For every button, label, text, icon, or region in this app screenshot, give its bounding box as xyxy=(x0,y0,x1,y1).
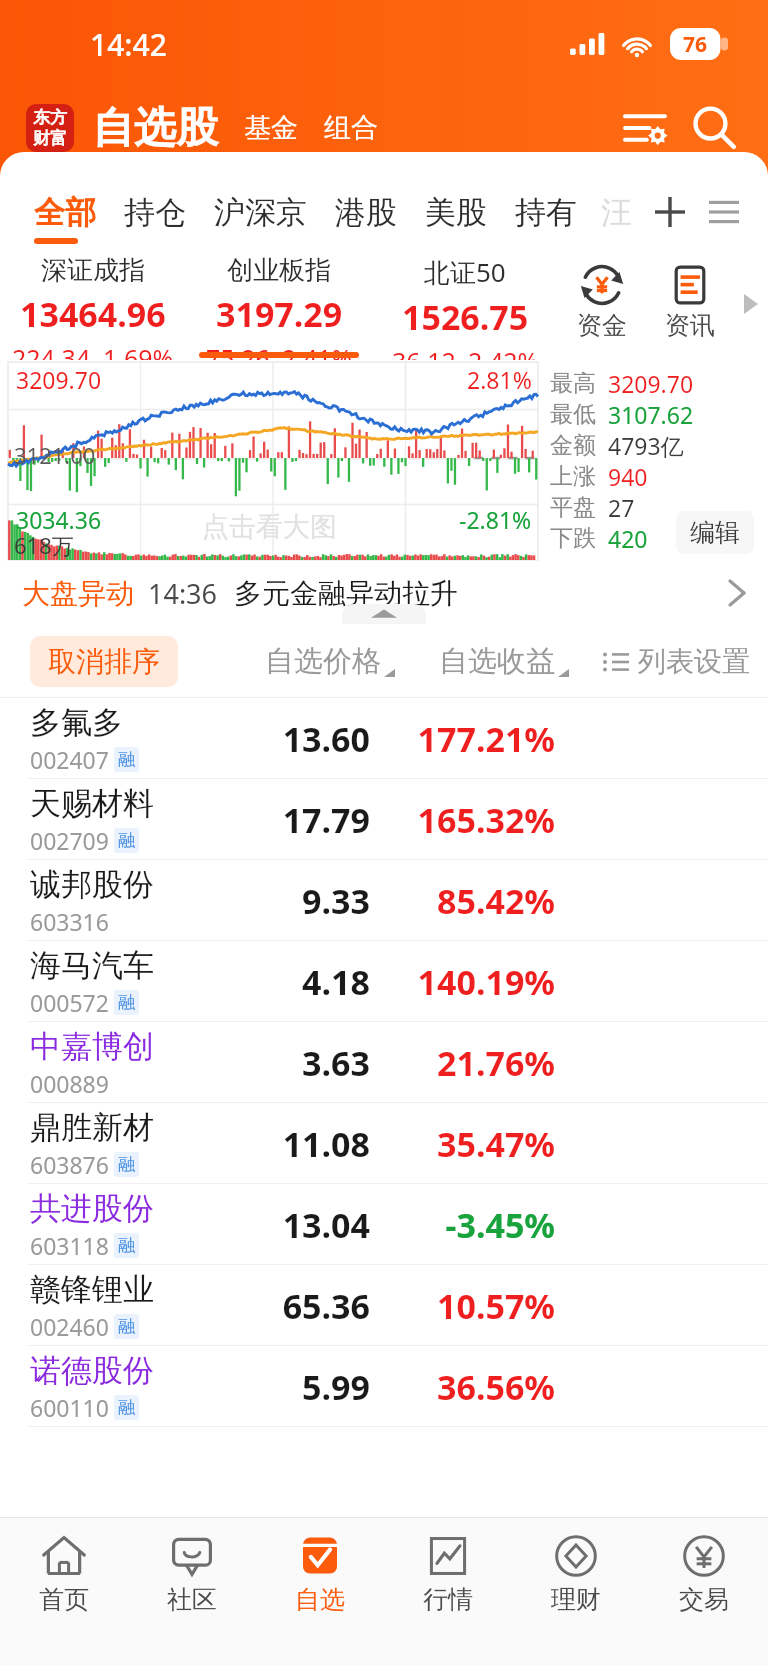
button[interactable]: 首页 xyxy=(0,1518,128,1630)
button[interactable]: 更多分组 xyxy=(700,188,748,236)
staticText: 13.60 xyxy=(282,716,370,762)
staticText: 4793亿 xyxy=(608,430,684,461)
staticText: 组合 xyxy=(324,111,378,145)
button[interactable]: 鼎胜新材 xyxy=(0,1103,768,1184)
button[interactable]: 社区 xyxy=(128,1518,256,1630)
staticText: 4.18 xyxy=(302,959,370,1005)
staticText: 603876 xyxy=(30,1149,109,1180)
button[interactable]: 深证成指 xyxy=(0,248,186,360)
staticText: 行情 xyxy=(423,1584,473,1615)
staticText: 自选收益 xyxy=(439,643,555,680)
button[interactable]: 行情 xyxy=(384,1518,512,1630)
staticText: 上涨 xyxy=(550,462,596,491)
staticText: 天赐材料 xyxy=(30,784,154,823)
staticText: 融 xyxy=(118,1316,135,1337)
button[interactable]: 添加自选 xyxy=(648,190,692,234)
staticText: 2.81% xyxy=(467,364,532,395)
staticText: 35.47% xyxy=(436,1121,555,1167)
staticText: 27 xyxy=(608,492,635,523)
staticText: 85.42% xyxy=(436,878,555,924)
staticText: 11.08 xyxy=(282,1121,370,1167)
staticText: 177.21% xyxy=(417,716,555,762)
staticText: 9.33 xyxy=(302,878,370,924)
button[interactable]: 自选收益 xyxy=(437,635,571,688)
button[interactable]: 自选 xyxy=(256,1518,384,1630)
staticText: 3209.70 xyxy=(16,364,102,395)
staticText: 东方 xyxy=(33,107,67,128)
staticText: 共进股份 xyxy=(30,1189,154,1228)
button[interactable]: 赣锋锂业 xyxy=(0,1265,768,1346)
button[interactable]: 持有 xyxy=(501,185,591,240)
staticText: 3.63 xyxy=(302,1040,370,1086)
staticText: 多元金融异动拉升 xyxy=(234,576,458,611)
staticText: 美股 xyxy=(425,193,487,232)
staticText: 鼎胜新材 xyxy=(30,1108,154,1147)
staticText: 2.41% xyxy=(282,341,353,360)
staticText: 1.69% xyxy=(103,341,174,360)
button[interactable]: 天赐材料 xyxy=(0,779,768,860)
staticText: 3034.36 xyxy=(16,504,102,535)
button[interactable]: 持仓 xyxy=(110,185,200,240)
staticText: 618万 xyxy=(14,530,74,560)
button[interactable]: 资金 xyxy=(558,248,646,360)
staticText: 融 xyxy=(118,749,135,770)
button[interactable]: 全部 xyxy=(20,185,110,240)
staticText: 融 xyxy=(118,1235,135,1256)
staticText: 3197.29 xyxy=(216,291,343,337)
button[interactable]: 多氟多 xyxy=(0,698,768,779)
staticText: 36.56% xyxy=(436,1364,555,1410)
staticText: 000889 xyxy=(30,1068,109,1099)
staticText: 多氟多 xyxy=(30,703,123,742)
button[interactable]: 美股 xyxy=(411,185,501,240)
button[interactable]: 诺德股份 xyxy=(0,1346,768,1427)
staticText: 深证成指 xyxy=(41,254,145,287)
button[interactable]: 取消排序 xyxy=(30,636,178,687)
button[interactable]: 搜索 xyxy=(680,94,748,162)
staticText: 创业板指 xyxy=(227,254,331,287)
staticText: 603118 xyxy=(30,1230,109,1261)
staticText: 3107.62 xyxy=(608,399,694,430)
staticText: 76 xyxy=(683,30,708,59)
button[interactable]: 编辑 xyxy=(676,511,754,554)
button[interactable]: 港股 xyxy=(321,185,411,240)
staticText: 融 xyxy=(118,830,135,851)
staticText: 600110 xyxy=(30,1392,109,1423)
button[interactable]: 交易 xyxy=(640,1518,768,1630)
staticText: 940 xyxy=(608,461,648,492)
staticText: 10.57% xyxy=(436,1283,555,1329)
staticText: 大盘异动 xyxy=(22,576,134,611)
button[interactable]: 理财 xyxy=(512,1518,640,1630)
button[interactable]: 组合 xyxy=(318,105,384,151)
button[interactable]: 收起 xyxy=(342,604,426,624)
button[interactable]: 自选价格 xyxy=(263,635,397,688)
staticText: 持有 xyxy=(515,193,577,232)
staticText: -2.81% xyxy=(459,504,532,535)
button[interactable]: 沪深京 xyxy=(200,185,321,240)
staticText: 下跌 xyxy=(550,524,596,553)
button[interactable]: 基金 xyxy=(238,105,304,151)
staticText: 诺德股份 xyxy=(30,1351,154,1390)
staticText: 3209.70 xyxy=(608,368,694,399)
staticText: 首页 xyxy=(39,1584,89,1615)
staticText: 自选股 xyxy=(92,102,218,155)
button[interactable]: 大盘异动 xyxy=(0,562,768,624)
staticText: -3.45% xyxy=(445,1202,555,1248)
staticText: 海马汽车 xyxy=(30,946,154,985)
button[interactable]: 列表设置 xyxy=(614,96,678,160)
button[interactable]: 北证50 xyxy=(372,248,558,360)
button[interactable]: 汪 xyxy=(601,193,632,232)
button[interactable]: 中嘉博创 xyxy=(0,1022,768,1103)
staticText: 融 xyxy=(118,1397,135,1418)
button[interactable]: 东方 xyxy=(26,104,74,152)
button[interactable]: 列表设置 xyxy=(601,636,752,687)
button[interactable]: 诚邦股份 xyxy=(0,860,768,941)
staticText: 13464.96 xyxy=(20,291,166,337)
staticText: 自选价格 xyxy=(265,643,381,680)
button[interactable]: 资讯 xyxy=(646,248,734,360)
staticText: 14:42 xyxy=(90,24,167,65)
button[interactable]: 共进股份 xyxy=(0,1184,768,1265)
button[interactable]: 海马汽车 xyxy=(0,941,768,1022)
staticText: 融 xyxy=(118,1154,135,1175)
button[interactable]: 创业板指 xyxy=(186,248,372,360)
button[interactable]: 指数分时图 xyxy=(0,360,538,562)
